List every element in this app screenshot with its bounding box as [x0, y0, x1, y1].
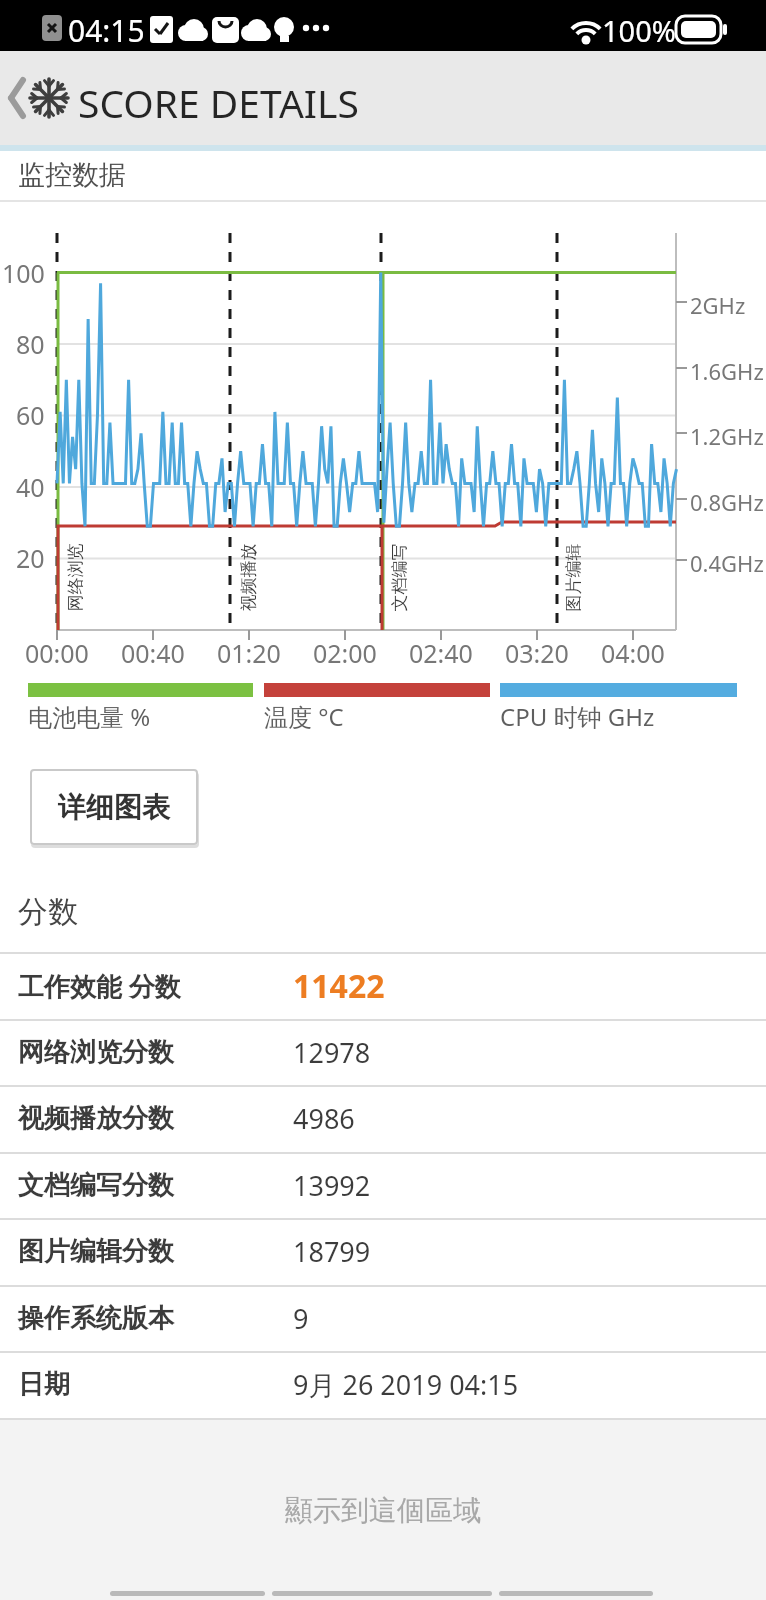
staticText: 文档编写 — [388, 543, 409, 611]
staticText: 04:15 — [68, 10, 145, 51]
staticText: 文档编写分数 — [18, 1169, 174, 1202]
staticText: 100% — [602, 11, 676, 50]
button[interactable]: 详细图表 — [30, 769, 198, 845]
staticText: 温度 °C — [264, 700, 344, 733]
staticText: 02:00 — [313, 636, 377, 670]
staticText: 02:40 — [409, 636, 473, 670]
staticText: 日期 — [18, 1368, 70, 1401]
staticText: 4986 — [293, 1100, 355, 1137]
staticText: 电池电量 % — [28, 700, 151, 733]
staticText: 图片编辑分数 — [18, 1235, 174, 1268]
staticText: 视频播放分数 — [18, 1102, 174, 1135]
staticText: 工作效能 分数 — [18, 968, 181, 1004]
staticText: 20 — [16, 541, 45, 575]
staticText: 9 — [293, 1300, 309, 1337]
staticText: 0.4GHz — [690, 548, 764, 578]
staticText: 顯示到這個區域 — [285, 1493, 481, 1528]
staticText: 0.8GHz — [690, 487, 764, 517]
staticText: 60 — [16, 398, 45, 432]
staticText: 9月 26 2019 04:15 — [293, 1366, 519, 1403]
staticText: 监控数据 — [18, 158, 126, 192]
staticText: CPU 时钟 GHz — [500, 700, 655, 733]
staticText: 00:40 — [121, 636, 185, 670]
staticText: 11422 — [293, 964, 385, 1008]
staticText: 1.2GHz — [690, 421, 764, 451]
staticText: 80 — [16, 327, 45, 361]
staticText: 04:00 — [601, 636, 665, 670]
staticText: 40 — [16, 470, 45, 504]
staticText: 图片编辑 — [562, 543, 583, 611]
staticText: 12978 — [293, 1034, 371, 1071]
staticText: 2GHz — [690, 290, 746, 320]
staticText: SCORE DETAILS — [78, 76, 359, 129]
staticText: 18799 — [293, 1233, 371, 1270]
button[interactable] — [0, 51, 70, 145]
staticText: 03:20 — [505, 636, 569, 670]
staticText: 100 — [2, 256, 45, 290]
staticText: 详细图表 — [58, 790, 170, 825]
staticText: 网络浏览 — [64, 543, 85, 611]
staticText: 网络浏览分数 — [18, 1036, 174, 1069]
staticText: 00:00 — [25, 636, 89, 670]
staticText: 01:20 — [217, 636, 281, 670]
staticText: 13992 — [293, 1167, 371, 1204]
staticText: 分数 — [18, 893, 78, 931]
staticText: 1.6GHz — [690, 356, 764, 386]
staticText: 视频播放 — [237, 543, 258, 611]
staticText: 操作系统版本 — [18, 1302, 174, 1335]
